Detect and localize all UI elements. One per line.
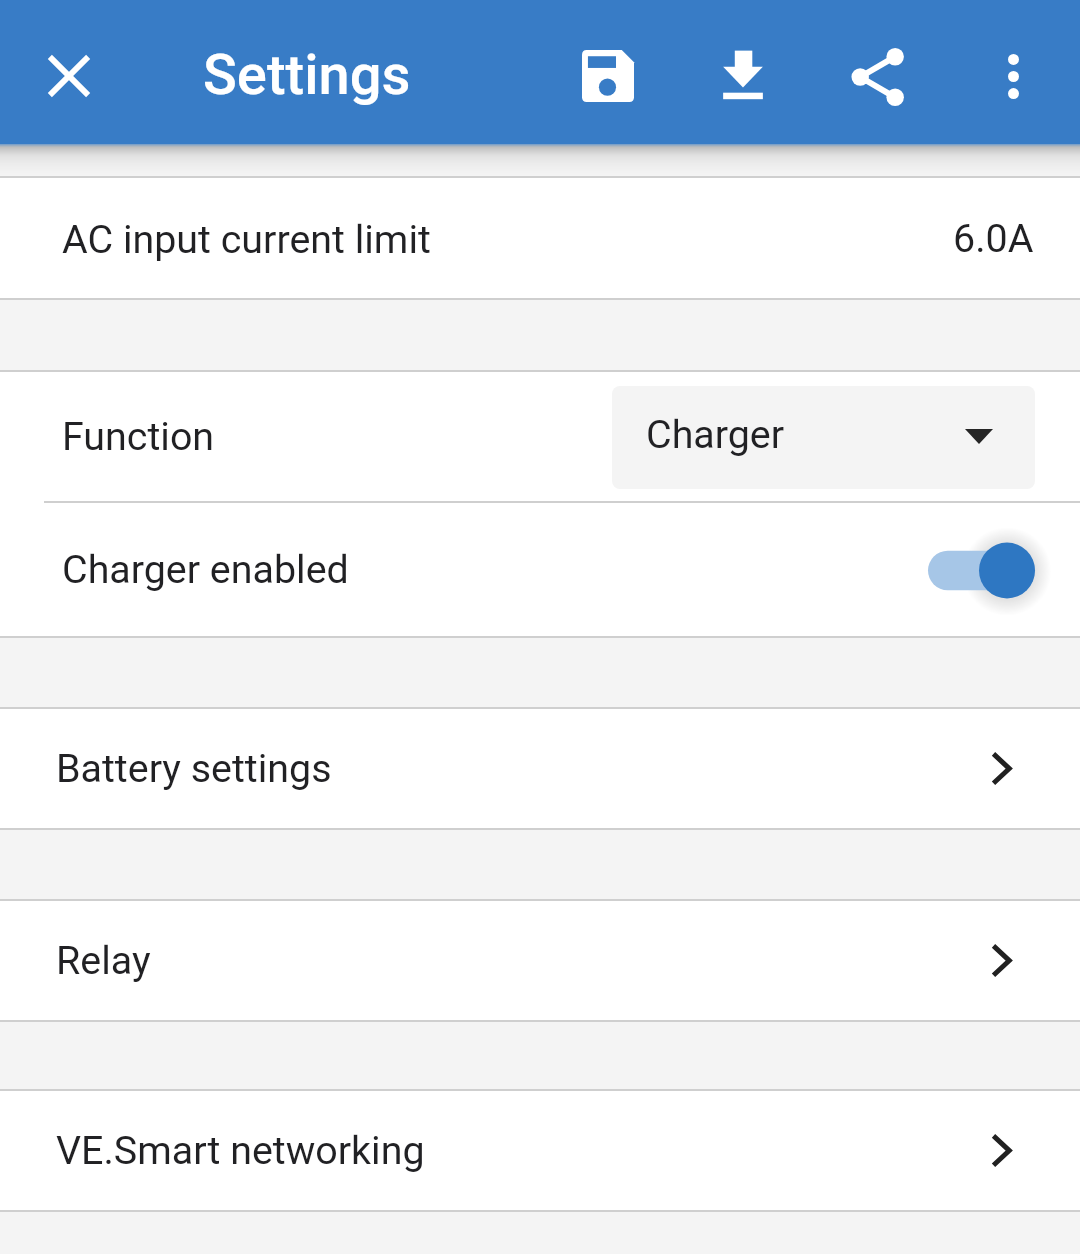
button[interactable]: Charger enabled toggle (918, 532, 1045, 609)
button[interactable]: Download (695, 28, 791, 124)
button[interactable]: Close (21, 28, 117, 124)
staticText: Settings (203, 42, 411, 108)
button[interactable]: VE.Smart networking (0, 1091, 1080, 1210)
button[interactable]: Charger (612, 386, 1035, 489)
button[interactable]: Relay (0, 901, 1080, 1020)
staticText: AC input current limit (62, 216, 431, 262)
staticText: Charger (646, 411, 785, 457)
staticText: Charger enabled (62, 546, 349, 592)
staticText: VE.Smart networking (56, 1127, 425, 1173)
button[interactable]: More options (965, 28, 1061, 124)
staticText: Function (62, 413, 215, 459)
button[interactable]: Share (830, 29, 926, 125)
staticText: Battery settings (56, 745, 332, 791)
button[interactable]: Battery settings (0, 709, 1080, 828)
button[interactable]: AC input current limit (0, 178, 1080, 298)
staticText: 6.0A (953, 215, 1034, 261)
button[interactable]: Save (560, 28, 656, 124)
button[interactable]: Charger enabled (0, 503, 1080, 636)
staticText: Relay (56, 937, 151, 983)
button[interactable]: Function (0, 372, 1080, 501)
